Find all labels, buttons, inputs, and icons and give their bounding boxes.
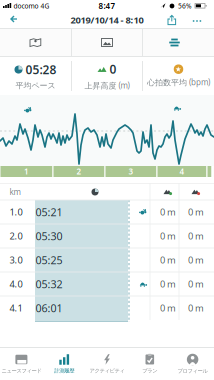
- staticText: 上昇高度 (m): [84, 80, 129, 91]
- button[interactable]: プロフィール: [171, 349, 214, 379]
- staticText: 4G: [40, 2, 49, 10]
- staticText: 05:21: [35, 205, 62, 219]
- staticText: 0 m: [160, 302, 176, 314]
- staticText: km: [9, 187, 20, 197]
- staticText: 心拍数平均 (bpm): [147, 77, 210, 87]
- staticText: 4: [179, 166, 184, 177]
- staticText: 0 m: [188, 254, 204, 266]
- button[interactable]: アクティビティ: [86, 349, 128, 379]
- staticText: 3: [128, 166, 133, 177]
- staticText: 平均ペース: [15, 81, 55, 90]
- staticText: 4.0: [9, 278, 22, 290]
- staticText: 05:30: [35, 229, 62, 243]
- button[interactable]: More: [193, 20, 201, 22]
- button[interactable]: プラン: [128, 349, 171, 379]
- staticText: プラン: [142, 367, 157, 374]
- staticText: 4.1: [9, 302, 22, 314]
- staticText: 8:47: [98, 1, 115, 11]
- staticText: 0 m: [188, 230, 204, 242]
- button[interactable]: Stats: [143, 29, 214, 56]
- button[interactable]: Photos: [72, 29, 142, 56]
- staticText: 05:32: [35, 277, 62, 291]
- staticText: 56%: [178, 2, 192, 10]
- button[interactable]: Share: [168, 15, 176, 25]
- button[interactable]: Map: [0, 29, 71, 56]
- staticText: プロフィール: [178, 368, 208, 374]
- button[interactable]: Back: [7, 15, 21, 25]
- staticText: 1: [24, 166, 29, 177]
- staticText: docomo: [13, 2, 38, 10]
- staticText: 0: [109, 61, 116, 77]
- staticText: 05:25: [35, 253, 62, 267]
- staticText: 0 m: [160, 254, 176, 266]
- staticText: 0 m: [160, 206, 176, 218]
- staticText: 3.0: [9, 254, 22, 266]
- staticText: 0 m: [188, 302, 204, 314]
- staticText: 1.0: [9, 206, 22, 218]
- staticText: 2019/10/14 - 8:10: [70, 14, 143, 26]
- staticText: ニュースフィード: [1, 367, 41, 374]
- staticText: 2.0: [9, 230, 22, 242]
- staticText: 0 m: [188, 206, 204, 218]
- staticText: 2: [76, 166, 81, 177]
- button[interactable]: ニュースフィード: [0, 349, 43, 379]
- staticText: 計測履歴: [54, 367, 74, 374]
- staticText: アクティビティ: [89, 367, 124, 374]
- staticText: 0 m: [160, 230, 176, 242]
- button[interactable]: 計測履歴: [43, 349, 86, 379]
- staticText: 0 m: [160, 278, 176, 290]
- staticText: 05:28: [25, 62, 56, 77]
- staticText: 06:01: [35, 301, 62, 315]
- staticText: 0 m: [188, 278, 204, 290]
